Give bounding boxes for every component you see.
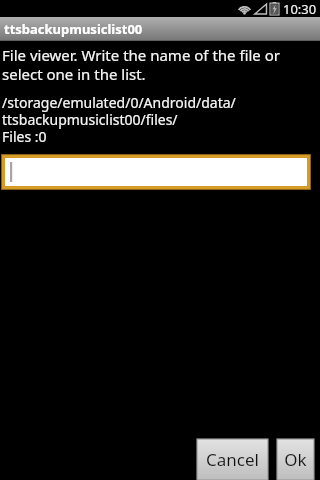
staticText: ttsbackupmusiclist00: [4, 20, 143, 38]
button[interactable]: Cancel: [197, 439, 268, 480]
staticText: Ok: [284, 448, 307, 471]
staticText: Cancel: [206, 448, 259, 471]
staticText: /storage/emulated/0/Android/data/ ttsbac…: [2, 93, 236, 146]
button[interactable]: Ok: [277, 439, 314, 480]
button[interactable]: [0, 154, 320, 190]
staticText: File viewer. Write the name of the file …: [2, 45, 316, 84]
staticText: 10:30: [283, 0, 317, 17]
